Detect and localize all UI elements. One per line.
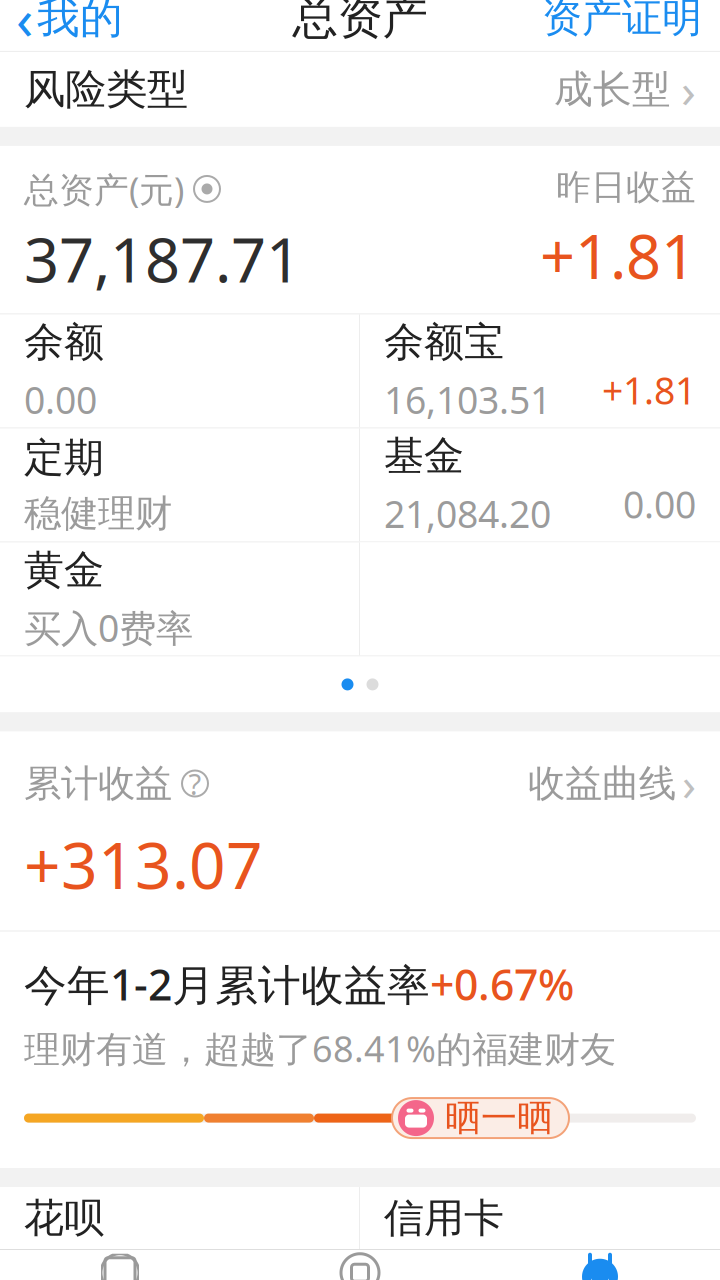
button[interactable]: 风险类型 [0,52,720,127]
staticText: 总资产 [292,0,427,46]
button[interactable]: 余额 [0,314,359,427]
button[interactable]: 收益曲线 [528,753,696,814]
staticText: 成长型 [554,66,671,113]
button[interactable]: 晒一晒 [392,1098,569,1138]
button[interactable]: 黄金 [0,542,359,655]
staticText: 基金 [384,432,464,481]
staticText: 稳健理财 [24,491,172,536]
staticText: +1.81 [540,214,696,296]
button[interactable]: 理财 [240,1250,480,1280]
staticText: ? [188,764,201,803]
staticText: 黄金 [24,546,104,595]
button[interactable]: ‹ [0,0,139,51]
staticText: 定期 [24,433,104,482]
staticText: 37,187.71 [24,218,301,299]
staticText: +0.67% [430,956,574,1012]
staticText: 余额 [24,318,104,367]
staticText: › [681,58,696,121]
staticText: 累计收益 [24,761,172,806]
staticText: 晒一晒 [445,1096,553,1140]
button[interactable]: 隐藏金额 [194,176,220,202]
staticText: 21,084.20 [384,489,551,538]
staticText: 16,103.51 [384,375,551,424]
button[interactable]: 信用卡 [360,1187,720,1249]
staticText: 理财有道，超越了68.41%的福建财友 [24,1024,616,1072]
staticText: 我的 [37,0,123,44]
button[interactable]: 精选 [0,1250,240,1280]
staticText: 风险类型 [24,64,188,115]
staticText: 信用卡 [384,1193,504,1243]
staticText: › [682,753,696,814]
button[interactable]: 定期 [0,428,359,541]
staticText: +313.07 [24,822,263,907]
staticText: 0.00 [623,479,696,529]
staticText: 余额宝 [384,318,504,367]
staticText: 0.00 [24,375,97,424]
button[interactable]: 余额宝 [360,314,720,427]
staticText: 总资产(元) [24,166,184,212]
staticText: 昨日收益 [556,166,696,208]
staticText: 今年1-2月累计收益率 [24,956,430,1012]
button[interactable]: 资产 [480,1250,720,1280]
staticText: 资产证明 [542,0,702,42]
staticText: ‹ [16,0,33,55]
staticText: 买入0费率 [24,603,193,652]
staticText: 花呗 [24,1193,104,1243]
button[interactable]: 花呗 [0,1187,359,1249]
button[interactable]: 资产证明 [524,0,720,51]
staticText: +1.81 [602,365,696,415]
button[interactable]: 基金 [360,428,720,541]
staticText: 收益曲线 [528,761,676,806]
